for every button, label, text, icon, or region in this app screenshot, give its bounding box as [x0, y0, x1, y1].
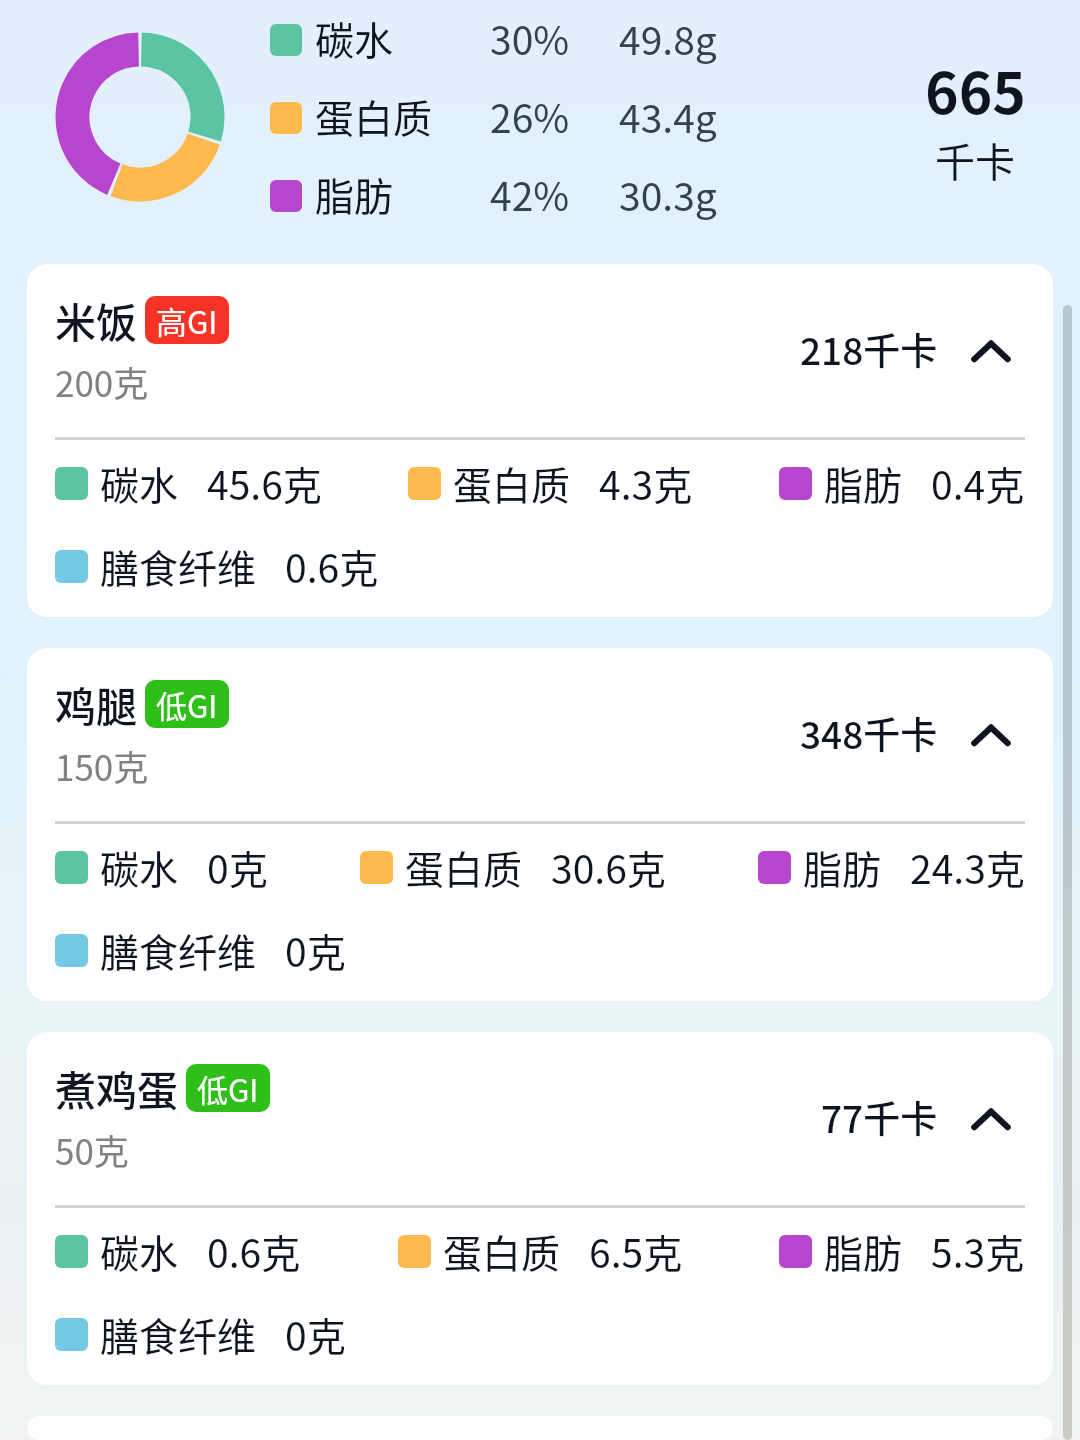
- button[interactable]: 鸡腿: [27, 648, 1053, 1001]
- staticText: 膳食纤维: [100, 1306, 257, 1362]
- button[interactable]: Collapse: [966, 324, 1016, 374]
- staticText: 49.8g: [619, 10, 717, 66]
- staticText: 26%: [490, 88, 570, 144]
- staticText: 0.6克: [207, 1223, 301, 1279]
- staticText: 4.3克: [599, 455, 693, 511]
- staticText: 30.6克: [551, 839, 666, 895]
- staticText: 0克: [285, 922, 346, 978]
- button[interactable]: Collapse: [966, 1092, 1016, 1142]
- staticText: 42%: [490, 166, 570, 222]
- staticText: 45.6克: [207, 455, 322, 511]
- staticText: 鸡腿: [55, 674, 137, 733]
- staticText: 膳食纤维: [100, 538, 257, 594]
- staticText: 碳水: [100, 839, 179, 895]
- button[interactable]: 煮鸡蛋: [27, 1032, 1053, 1385]
- staticText: 千卡: [935, 131, 1015, 189]
- staticText: 脂肪: [315, 166, 394, 222]
- staticText: 0克: [207, 839, 268, 895]
- staticText: 煮鸡蛋: [55, 1058, 178, 1117]
- staticText: 低GI: [197, 1066, 259, 1111]
- staticText: 蛋白质: [405, 839, 523, 895]
- staticText: 低GI: [156, 682, 218, 727]
- staticText: 50克: [55, 1124, 129, 1175]
- staticText: 高GI: [156, 298, 218, 343]
- staticText: 脂肪: [803, 839, 882, 895]
- staticText: 5.3克: [931, 1223, 1025, 1279]
- staticText: 150克: [55, 740, 149, 791]
- staticText: 348千卡: [800, 706, 938, 760]
- staticText: 0.4克: [931, 455, 1025, 511]
- staticText: 30%: [490, 10, 570, 66]
- staticText: 30.3g: [619, 166, 717, 222]
- staticText: 碳水: [100, 455, 179, 511]
- staticText: 24.3克: [910, 839, 1025, 895]
- staticText: 665: [925, 48, 1026, 131]
- staticText: 米饭: [55, 290, 137, 349]
- staticText: 脂肪: [824, 1223, 903, 1279]
- staticText: 77千卡: [821, 1090, 938, 1144]
- staticText: 膳食纤维: [100, 922, 257, 978]
- button[interactable]: 米饭: [27, 264, 1053, 617]
- staticText: 蛋白质: [453, 455, 571, 511]
- staticText: 6.5克: [589, 1223, 683, 1279]
- staticText: 0克: [285, 1306, 346, 1362]
- staticText: 0.6克: [285, 538, 379, 594]
- staticText: 蛋白质: [443, 1223, 561, 1279]
- staticText: 218千卡: [800, 322, 938, 376]
- button[interactable]: Collapse: [966, 708, 1016, 758]
- staticText: 200克: [55, 356, 149, 407]
- staticText: 蛋白质: [315, 88, 433, 144]
- staticText: 脂肪: [824, 455, 903, 511]
- staticText: 碳水: [100, 1223, 179, 1279]
- staticText: 碳水: [315, 10, 394, 66]
- staticText: 43.4g: [619, 88, 717, 144]
